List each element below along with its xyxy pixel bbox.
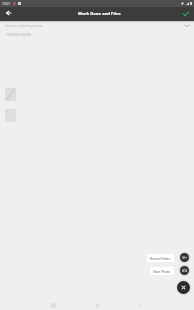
button[interactable]: Back	[0, 7, 17, 21]
button[interactable]: Back	[133, 298, 147, 310]
button[interactable]: Recents	[46, 298, 60, 310]
button[interactable]: Select a project/agent/site	[0, 22, 194, 29]
button[interactable]: Record Video	[147, 254, 174, 262]
button[interactable]: Home	[90, 298, 104, 310]
button[interactable]: Done	[177, 7, 194, 21]
button[interactable]: Close menu	[177, 281, 190, 294]
staticText: Work Done and Files	[78, 11, 121, 17]
button[interactable]: Take Photo	[150, 267, 174, 275]
staticText: Record Video	[150, 256, 171, 260]
button[interactable]: Record Video	[180, 253, 189, 262]
button[interactable]: Take Photo	[180, 266, 189, 275]
staticText: 10:01	[2, 2, 11, 6]
staticText: Take Photo	[153, 269, 171, 273]
staticText: Select a project/agent/site	[5, 24, 43, 28]
staticText: PROBLEM SOLVED	[6, 33, 31, 37]
